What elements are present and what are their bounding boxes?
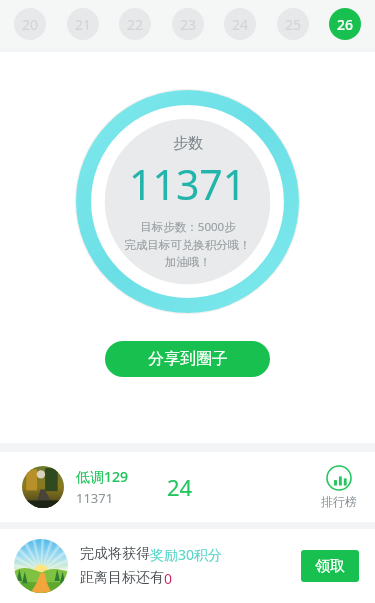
button[interactable]: 低调129	[0, 452, 375, 522]
staticText: 0	[164, 569, 173, 588]
button[interactable]: 20	[14, 8, 46, 40]
staticText: 26	[337, 15, 354, 34]
staticText: 24	[167, 472, 193, 502]
staticText: 低调129	[76, 467, 129, 486]
button[interactable]: 22	[119, 8, 151, 40]
other: 排行榜	[326, 465, 352, 491]
staticText: 奖励30积分	[150, 545, 223, 564]
button[interactable]: 25	[277, 8, 309, 40]
staticText: 25	[285, 15, 302, 34]
staticText: 11371	[129, 156, 247, 212]
staticText: 21	[75, 15, 92, 34]
staticText: 领取	[315, 557, 345, 576]
button[interactable]: 21	[67, 8, 99, 40]
staticText: 完成将获得	[80, 545, 150, 563]
staticText: 24	[232, 15, 249, 34]
staticText: 步数	[173, 134, 203, 153]
staticText: 完成目标可兑换积分哦！	[124, 238, 251, 252]
staticText: 23	[180, 15, 197, 34]
button[interactable]: 领取	[301, 550, 359, 582]
staticText: 目标步数：5000步	[140, 219, 236, 235]
button[interactable]: 23	[172, 8, 204, 40]
button[interactable]: 24	[224, 8, 256, 40]
staticText: 22	[127, 15, 144, 34]
staticText: 距离目标还有	[80, 569, 164, 587]
staticText: 分享到圈子	[148, 349, 228, 369]
staticText: 加油哦！	[165, 255, 211, 269]
button[interactable]: 分享到圈子	[105, 341, 270, 377]
staticText: 20	[22, 15, 39, 34]
staticText: 11371	[76, 489, 114, 507]
button[interactable]: 26	[329, 8, 361, 40]
staticText: 排行榜	[321, 494, 357, 509]
